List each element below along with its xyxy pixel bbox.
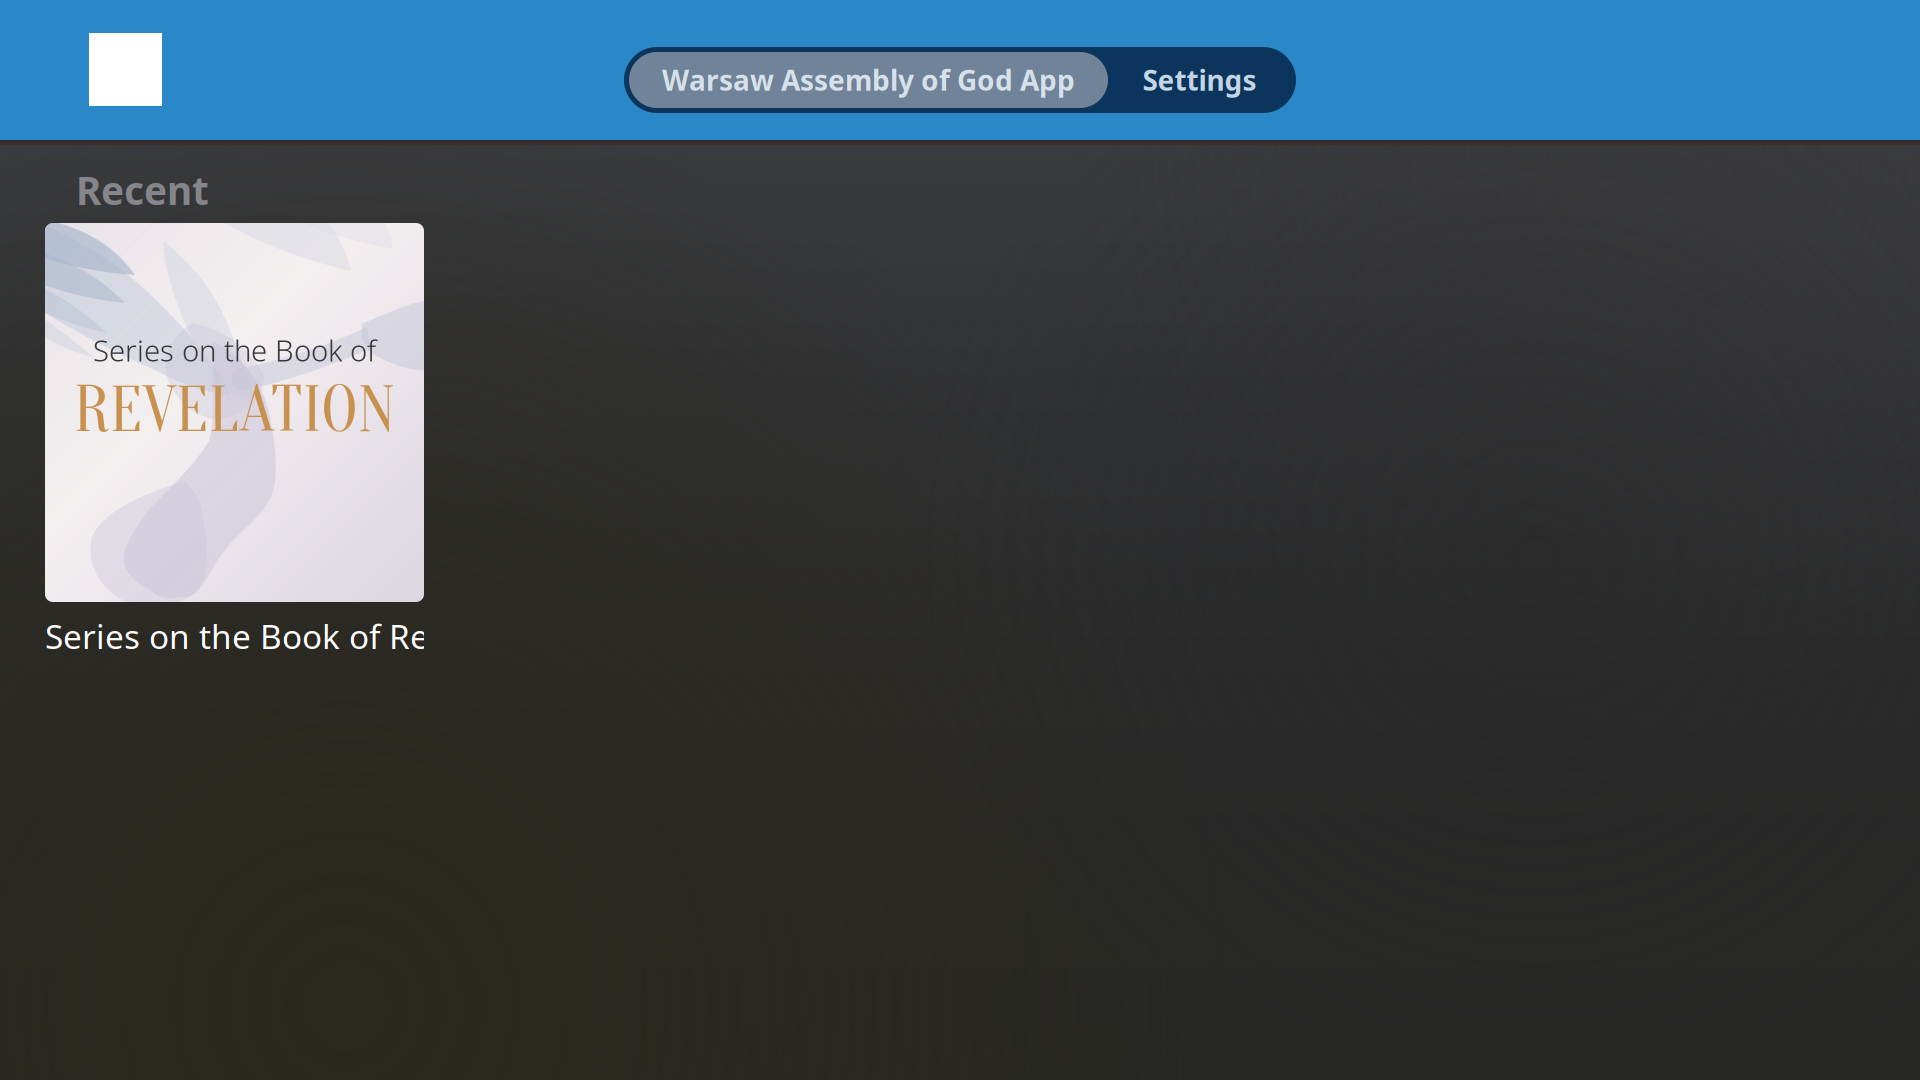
staticText: Series on the Book of Revelation	[45, 614, 515, 658]
staticText: Series on the Book of	[93, 330, 376, 369]
button[interactable]: Series on the Book of	[45, 223, 424, 662]
staticText: Warsaw Assembly of God App	[662, 61, 1075, 99]
staticText: Recent	[76, 164, 209, 216]
staticText: REVELATION	[73, 372, 395, 448]
button[interactable]: Warsaw Assembly of God App	[629, 52, 1108, 108]
staticText: Settings	[1142, 61, 1256, 99]
button[interactable]: Settings	[1108, 52, 1291, 108]
